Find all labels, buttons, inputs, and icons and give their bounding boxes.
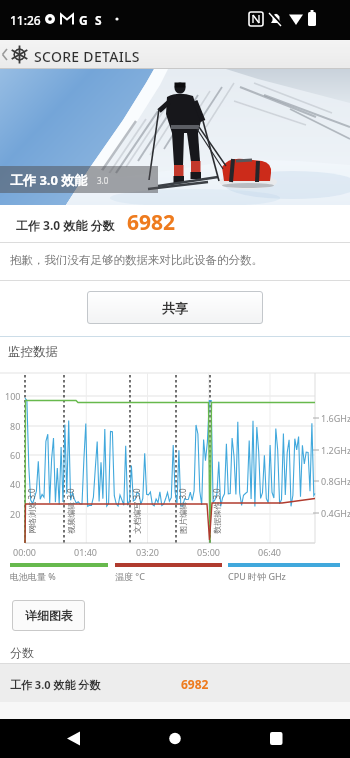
staticText: 11:26 — [10, 12, 41, 28]
staticText: 06:40 — [258, 546, 282, 558]
button[interactable] — [233, 719, 350, 758]
staticText: 80 — [10, 420, 21, 432]
staticText: 0.8GHz — [321, 475, 350, 487]
button[interactable] — [0, 719, 116, 758]
staticText: 0.4GHz — [321, 507, 350, 519]
staticText: G — [79, 12, 88, 28]
staticText: 05:00 — [197, 546, 221, 558]
staticText: 1.6GHz — [321, 412, 350, 424]
staticText: 60 — [10, 449, 21, 461]
staticText: 分数 — [10, 645, 34, 660]
staticText: 共享 — [162, 300, 188, 316]
staticText: 监控数据 — [8, 344, 58, 360]
staticText: 03:20 — [136, 546, 160, 558]
staticText: 6982 — [127, 208, 176, 237]
staticText: 40 — [10, 478, 21, 490]
staticText: CPU 时钟 GHz — [228, 570, 286, 582]
staticText: 视频编辑 3.0 — [65, 480, 77, 542]
button[interactable]: 工作 3.0 效能 分数 — [0, 664, 350, 702]
staticText: 温度 °C — [115, 570, 145, 582]
staticText: 抱歉，我们没有足够的数据来对比此设备的分数。 — [10, 253, 263, 267]
staticText: 工作 3.0 效能 — [10, 171, 88, 189]
staticText: 网络浏览 3.0 — [26, 480, 38, 542]
staticText: 20 — [10, 508, 21, 520]
staticText: SCORE DETAILS — [34, 47, 140, 66]
staticText: 图片编辑 3.0 — [177, 480, 189, 542]
button[interactable]: SCORE DETAILS — [0, 40, 350, 69]
staticText: 01:40 — [74, 546, 98, 558]
button[interactable] — [116, 719, 233, 758]
button[interactable]: 共享 — [87, 291, 263, 324]
staticText: 1.2GHz — [321, 444, 350, 456]
staticText: S — [95, 12, 102, 28]
staticText: 工作 3.0 效能 分数 — [10, 677, 101, 692]
staticText: 3.0 — [97, 175, 109, 186]
staticText: 文档编写 3.0 — [131, 480, 143, 542]
button[interactable]: 详细图表 — [12, 600, 85, 631]
staticText: 100 — [5, 390, 21, 402]
staticText: 工作 3.0 效能 分数 — [16, 217, 115, 233]
staticText: 00:00 — [13, 546, 37, 558]
staticText: 6982 — [181, 676, 209, 692]
staticText: 数据操作 3.0 — [211, 480, 223, 542]
staticText: 电池电量 % — [10, 570, 56, 582]
staticText: 详细图表 — [25, 608, 73, 623]
